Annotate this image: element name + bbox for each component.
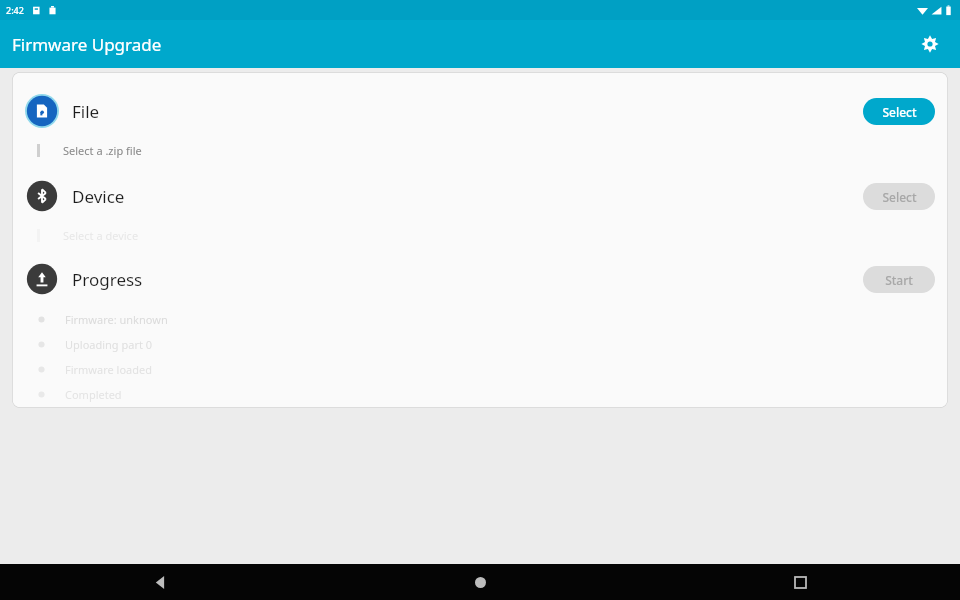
button[interactable]: Settings bbox=[910, 24, 950, 64]
button[interactable]: Select bbox=[863, 183, 935, 210]
button[interactable]: Select bbox=[863, 98, 935, 125]
staticText: Firmware Upgrade bbox=[12, 33, 162, 56]
button[interactable]: File bbox=[12, 89, 948, 133]
staticText: Firmware: unknown bbox=[65, 312, 168, 327]
staticText: 2:42 bbox=[6, 4, 24, 16]
staticText: Start bbox=[885, 272, 913, 288]
staticText: Select a .zip file bbox=[63, 143, 142, 158]
button[interactable]: Start bbox=[863, 266, 935, 293]
staticText: Device bbox=[72, 185, 125, 208]
staticText: File bbox=[72, 100, 100, 123]
button[interactable]: Recent apps bbox=[640, 564, 960, 600]
button[interactable]: Home bbox=[320, 564, 640, 600]
staticText: Select a device bbox=[63, 228, 139, 243]
staticText: Select bbox=[882, 104, 917, 120]
button[interactable]: Back bbox=[0, 564, 320, 600]
staticText: Firmware loaded bbox=[65, 362, 152, 377]
staticText: Uploading part 0 bbox=[65, 337, 153, 352]
staticText: Select bbox=[882, 189, 917, 205]
button[interactable]: Device bbox=[12, 174, 948, 218]
staticText: Completed bbox=[65, 387, 122, 402]
button[interactable]: Progress bbox=[12, 257, 948, 301]
staticText: Progress bbox=[72, 268, 143, 291]
